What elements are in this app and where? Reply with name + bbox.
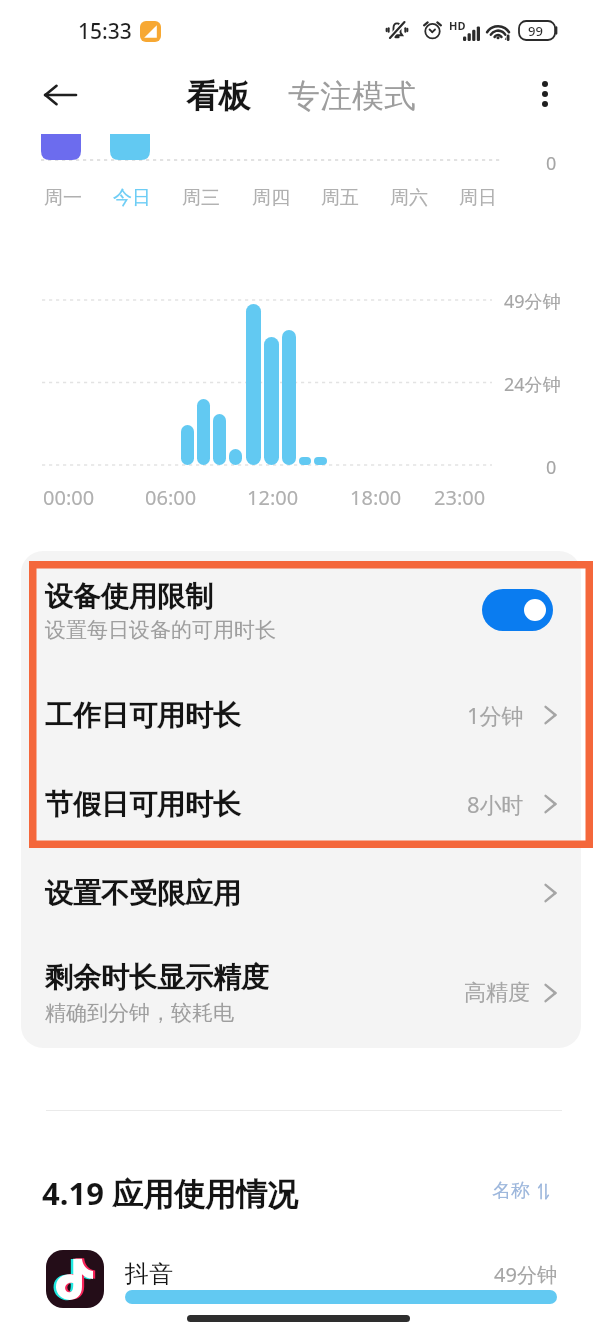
button[interactable]: 设置不受限应用 [21,849,581,937]
staticText: 1分钟 [467,700,524,730]
staticText: 23:00 [434,484,486,511]
staticText: 高精度 [464,979,530,1007]
staticText: 0 [546,151,557,176]
staticText: 06:00 [145,484,197,511]
button[interactable]: 周四 [241,184,301,212]
staticText: 剩余时长显示精度 [45,960,269,995]
button[interactable]: 周三 [171,184,231,212]
staticText: 49分钟 [494,1261,557,1288]
button[interactable]: 周日 [448,184,508,212]
staticText: 周三 [182,186,220,210]
staticText: 今日 [113,186,151,210]
staticText: 设置不受限应用 [45,876,544,911]
staticText: HD [449,18,466,33]
staticText: 专注模式 [288,76,416,116]
button[interactable]: 周六 [379,184,439,212]
button[interactable]: 抖音 [0,1250,600,1328]
staticText: 抖音 [125,1259,494,1289]
staticText: 8小时 [467,789,524,819]
staticText: 00:00 [43,484,95,511]
staticText: 周五 [321,186,359,210]
staticText: 精确到分钟，较耗电 [45,1000,234,1026]
button[interactable]: 剩余时长显示精度 [21,941,581,1045]
staticText: 18:00 [350,484,402,511]
staticText: 0 [546,455,557,480]
staticText: 工作日可用时长 [45,698,467,733]
button[interactable]: More options [521,70,569,118]
staticText: 周六 [390,186,428,210]
staticText: 设置每日设备的可用时长 [45,617,276,643]
button[interactable]: 周一 [33,184,93,212]
button[interactable]: 节假日可用时长 [21,760,581,848]
staticText: 节假日可用时长 [45,787,467,822]
staticText: 周四 [252,186,290,210]
staticText: 99 [528,22,543,40]
button[interactable]: Back [34,69,86,121]
button[interactable]: 今日 [102,184,162,212]
button[interactable]: 设备使用限制 [21,551,581,671]
staticText: 15:33 [78,17,132,46]
staticText: 看板 [186,76,250,116]
staticText: 12:00 [247,484,299,511]
staticText: 周日 [459,186,497,210]
button[interactable]: 名称 [492,1176,549,1206]
button[interactable]: 工作日可用时长 [21,671,581,759]
staticText: 周一 [44,186,82,210]
button[interactable]: 周五 [310,184,370,212]
staticText: 4.19 应用使用情况 [42,1172,298,1214]
staticText: 24分钟 [504,372,561,397]
staticText: 49分钟 [504,289,561,314]
staticText: 设备使用限制 [45,579,213,614]
button[interactable]: 看板 [186,76,250,116]
button[interactable]: 专注模式 [288,76,416,116]
staticText: 名称 [492,1179,530,1203]
